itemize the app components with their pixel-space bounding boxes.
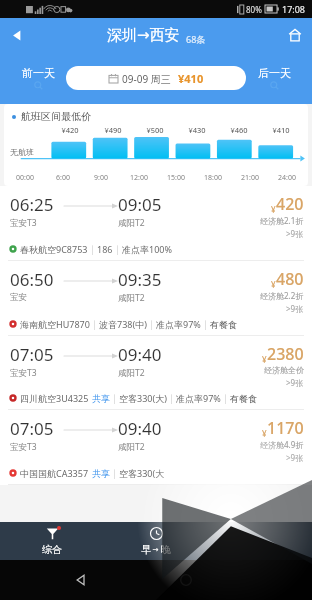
button[interactable]: 07:05: [0, 410, 312, 485]
staticText: 早: [141, 543, 151, 556]
staticText: 综合: [42, 543, 62, 556]
staticText: 空客330(大: [119, 467, 165, 479]
staticText: 经济舱2.1折: [260, 215, 304, 226]
staticText: 共享: [92, 393, 110, 404]
staticText: ¥: [271, 279, 276, 290]
button[interactable]: 航班区间最低价: [4, 104, 308, 186]
button[interactable]: Back: [66, 565, 96, 595]
staticText: 宝安T3: [10, 441, 37, 453]
staticText: ¥: [271, 204, 276, 215]
staticText: │: [167, 393, 176, 404]
staticText: 186: [97, 243, 113, 255]
staticText: 经济舱4.9折: [260, 439, 304, 450]
staticText: ¥: [262, 354, 267, 365]
staticText: ¥460: [230, 125, 248, 135]
staticText: 深圳→西安: [107, 26, 180, 45]
staticText: 15:00: [167, 173, 185, 183]
staticText: 18:00: [204, 173, 222, 183]
staticText: 有餐食: [210, 319, 237, 330]
button[interactable]: 06:25: [0, 186, 312, 261]
staticText: ¥500: [146, 125, 164, 135]
staticText: 有餐食: [230, 393, 257, 404]
staticText: 准点率100%: [122, 243, 172, 255]
staticText: 1170: [267, 417, 304, 439]
staticText: │: [147, 319, 156, 330]
staticText: 波音738(中): [99, 318, 147, 330]
staticText: │: [110, 468, 119, 479]
staticText: 咸阳T2: [118, 367, 145, 379]
staticText: 共享: [92, 468, 110, 479]
staticText: 9:00: [94, 173, 108, 183]
staticText: 准点率97%: [156, 318, 201, 330]
staticText: 68条: [186, 33, 206, 45]
staticText: 06:50: [10, 268, 54, 291]
button[interactable]: Home: [278, 18, 312, 52]
staticText: 宝安T3: [10, 367, 37, 379]
staticText: │: [201, 319, 210, 330]
staticText: >9张: [286, 228, 304, 239]
staticText: 09:40: [118, 417, 162, 440]
staticText: >9张: [286, 377, 304, 388]
staticText: 宝安: [10, 292, 27, 303]
button[interactable]: 前一天: [10, 58, 66, 98]
staticText: ¥430: [188, 125, 206, 135]
staticText: 宝安T3: [10, 217, 37, 229]
staticText: 00:00: [16, 173, 34, 183]
staticText: 后一天: [258, 66, 291, 80]
staticText: 17:08: [282, 3, 306, 15]
staticText: 06:25: [10, 193, 54, 216]
staticText: 经济舱全价: [264, 365, 304, 375]
staticText: 四川航空3U4325: [20, 392, 89, 404]
staticText: │: [113, 244, 122, 255]
staticText: 09:05: [118, 193, 162, 216]
staticText: ¥: [262, 428, 267, 439]
button[interactable]: 06:50: [0, 261, 312, 336]
staticText: 海南航空HU7870: [20, 318, 90, 330]
button[interactable]: Home: [171, 565, 201, 595]
staticText: 80%: [246, 4, 262, 15]
button[interactable]: 后一天: [246, 58, 302, 98]
staticText: 咸阳T2: [118, 217, 145, 229]
staticText: │: [110, 393, 119, 404]
staticText: 准点率97%: [176, 392, 221, 404]
staticText: 07:05: [10, 343, 54, 366]
staticText: │: [90, 319, 99, 330]
staticText: 6:00: [56, 173, 70, 183]
staticText: 中国国航CA3357: [20, 467, 89, 479]
staticText: 晚: [161, 543, 171, 556]
staticText: 春秋航空9C8753: [20, 243, 88, 255]
staticText: 480: [276, 268, 304, 290]
staticText: 无航班: [10, 147, 34, 157]
staticText: ¥490: [104, 125, 122, 135]
staticText: ¥420: [61, 125, 79, 135]
staticText: 09:35: [118, 268, 162, 291]
button[interactable]: 早: [104, 522, 208, 560]
button[interactable]: Back: [0, 18, 34, 52]
staticText: 420: [276, 193, 304, 215]
staticText: ¥410: [272, 125, 290, 135]
button[interactable]: 09-09 周三: [66, 66, 246, 90]
button[interactable]: 综合: [0, 522, 104, 560]
button[interactable]: 07:05: [0, 336, 312, 410]
staticText: 经济舱2.2折: [260, 290, 304, 301]
staticText: 09-09 周三: [122, 72, 171, 86]
staticText: →: [151, 545, 161, 555]
staticText: 前一天: [22, 66, 55, 80]
staticText: │: [221, 393, 230, 404]
staticText: 07:05: [10, 417, 54, 440]
staticText: 2380: [267, 343, 304, 365]
staticText: ¥410: [178, 71, 204, 86]
staticText: 21:00: [241, 173, 259, 183]
staticText: 咸阳T2: [118, 292, 145, 304]
staticText: 空客330(大): [119, 392, 167, 404]
staticText: >9张: [286, 303, 304, 314]
staticText: 咸阳T2: [118, 441, 145, 453]
staticText: 09:40: [118, 343, 162, 366]
staticText: 航班区间最低价: [21, 110, 91, 123]
staticText: >9张: [286, 452, 304, 463]
staticText: │: [88, 244, 97, 255]
staticText: 24:00: [278, 173, 296, 183]
staticText: 12:00: [130, 173, 148, 183]
